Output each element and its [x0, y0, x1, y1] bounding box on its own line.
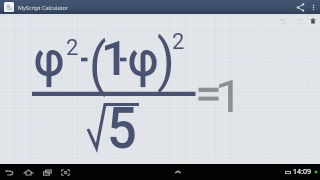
- staticText: 1: [215, 70, 244, 123]
- button[interactable]: Delete: [307, 15, 319, 27]
- button[interactable]: Recent apps: [40, 165, 54, 179]
- button[interactable]: Redo: [293, 15, 305, 27]
- button[interactable]: Home: [21, 165, 35, 179]
- staticText: ): [157, 26, 175, 94]
- button[interactable]: Back: [2, 165, 16, 179]
- staticText: 1: [101, 30, 129, 87]
- staticText: 5: [107, 95, 137, 162]
- staticText: (: [89, 30, 107, 98]
- button[interactable]: Undo: [277, 15, 289, 27]
- button[interactable]: More options: [307, 1, 319, 13]
- staticText: 14:09: [293, 167, 311, 177]
- staticText: 2: [172, 29, 185, 55]
- staticText: φ: [128, 31, 159, 88]
- staticText: 2: [66, 35, 79, 61]
- staticText: φ: [34, 31, 65, 88]
- button[interactable]: Show notifications: [171, 165, 185, 179]
- staticText: MyScript Calculator: [18, 4, 69, 11]
- button[interactable]: Share: [293, 0, 307, 14]
- button[interactable]: Screenshot: [58, 165, 72, 179]
